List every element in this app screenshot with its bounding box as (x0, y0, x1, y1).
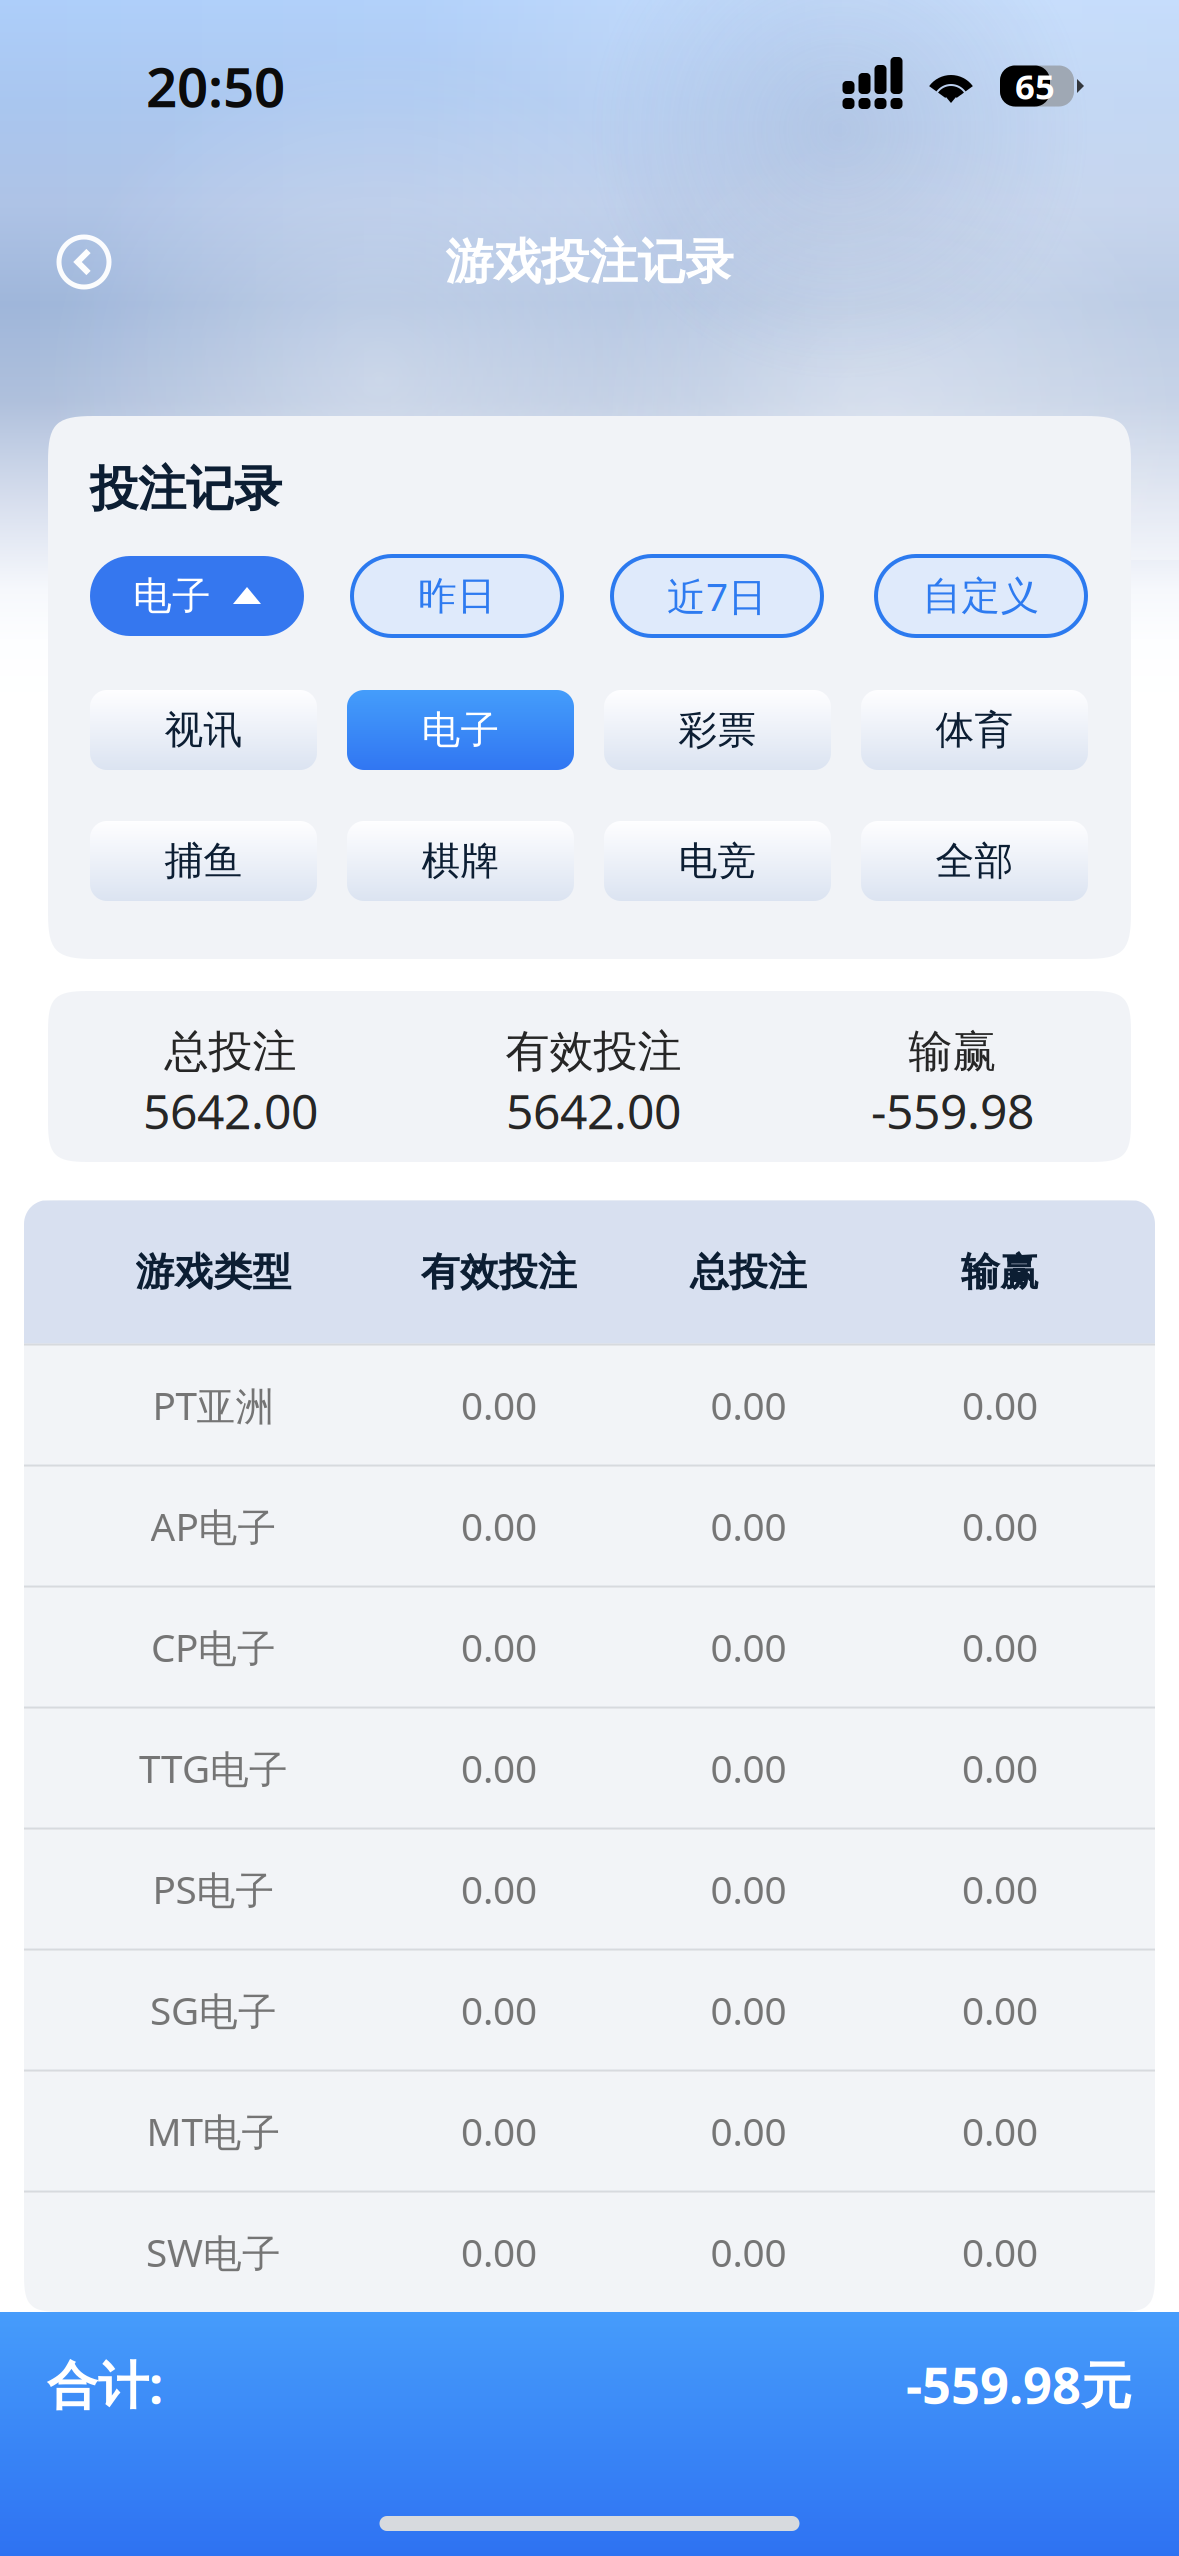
staticText: 全部 (935, 837, 1013, 885)
button[interactable]: 昨日 (352, 556, 562, 636)
staticText: SW电子 (146, 2226, 281, 2278)
staticText: 0.00 (962, 1379, 1038, 1431)
button[interactable]: 电子 (347, 690, 574, 770)
staticText: AP电子 (150, 1500, 276, 1552)
staticText: 20:50 (146, 50, 285, 122)
staticText: 0.00 (962, 1742, 1038, 1794)
button[interactable]: 视讯 (90, 690, 317, 770)
button[interactable]: 体育 (861, 690, 1088, 770)
button[interactable]: 近7日 (612, 556, 822, 636)
staticText: 电子 (421, 706, 499, 754)
staticText: 电子 (133, 572, 211, 620)
staticText: 总投注 (164, 1025, 296, 1079)
button[interactable]: Back (48, 226, 120, 298)
staticText: -559.98元 (906, 2350, 1132, 2418)
staticText: 0.00 (710, 1863, 786, 1915)
staticText: PS电子 (152, 1863, 274, 1915)
staticText: 0.00 (710, 1500, 786, 1552)
staticText: 0.00 (962, 1500, 1038, 1552)
button[interactable]: 自定义 (876, 556, 1086, 636)
staticText: 0.00 (710, 1621, 786, 1673)
staticText: 0.00 (461, 2105, 537, 2157)
staticText: 0.00 (461, 1500, 537, 1552)
staticText: 0.00 (710, 2226, 786, 2278)
button[interactable]: 彩票 (604, 690, 831, 770)
button[interactable]: 棋牌 (347, 821, 574, 901)
staticText: 自定义 (922, 572, 1039, 620)
staticText: 0.00 (710, 1742, 786, 1794)
staticText: -559.98 (871, 1079, 1034, 1142)
staticText: 0.00 (461, 1863, 537, 1915)
button[interactable]: 电子 (90, 556, 304, 636)
staticText: 投注记录 (90, 459, 282, 518)
staticText: CP电子 (151, 1621, 276, 1673)
staticText: 0.00 (962, 1984, 1038, 2036)
staticText: 0.00 (461, 1742, 537, 1794)
staticText: 游戏投注记录 (445, 232, 733, 291)
staticText: 昨日 (418, 572, 496, 620)
staticText: 输赢 (961, 1248, 1039, 1296)
staticText: TTG电子 (139, 1742, 288, 1794)
staticText: 0.00 (461, 1984, 537, 2036)
staticText: 视讯 (164, 706, 242, 754)
button[interactable]: 电竞 (604, 821, 831, 901)
staticText: 输赢 (908, 1025, 996, 1079)
staticText: 0.00 (962, 1621, 1038, 1673)
staticText: 总投注 (690, 1248, 807, 1296)
staticText: 游戏类型 (135, 1248, 291, 1296)
staticText: 有效投注 (421, 1248, 577, 1296)
staticText: MT电子 (146, 2105, 280, 2157)
staticText: 捕鱼 (164, 837, 242, 885)
staticText: 0.00 (962, 2226, 1038, 2278)
staticText: 0.00 (461, 2226, 537, 2278)
staticText: 0.00 (710, 2105, 786, 2157)
staticText: 电竞 (678, 837, 756, 885)
staticText: 棋牌 (421, 837, 499, 885)
staticText: 5642.00 (143, 1079, 318, 1142)
staticText: SG电子 (150, 1984, 277, 2036)
staticText: 65 (1015, 63, 1055, 109)
staticText: 0.00 (962, 1863, 1038, 1915)
staticText: 0.00 (461, 1379, 537, 1431)
staticText: PT亚洲 (152, 1379, 274, 1431)
staticText: 0.00 (962, 2105, 1038, 2157)
staticText: 0.00 (710, 1984, 786, 2036)
button[interactable]: 全部 (861, 821, 1088, 901)
staticText: 体育 (935, 706, 1013, 754)
staticText: 5642.00 (506, 1079, 681, 1142)
staticText: 合计: (47, 2350, 163, 2418)
staticText: 近7日 (667, 570, 767, 622)
button[interactable]: 捕鱼 (90, 821, 317, 901)
staticText: 0.00 (461, 1621, 537, 1673)
staticText: 有效投注 (505, 1025, 681, 1079)
staticText: 彩票 (678, 706, 756, 754)
staticText: 0.00 (710, 1379, 786, 1431)
